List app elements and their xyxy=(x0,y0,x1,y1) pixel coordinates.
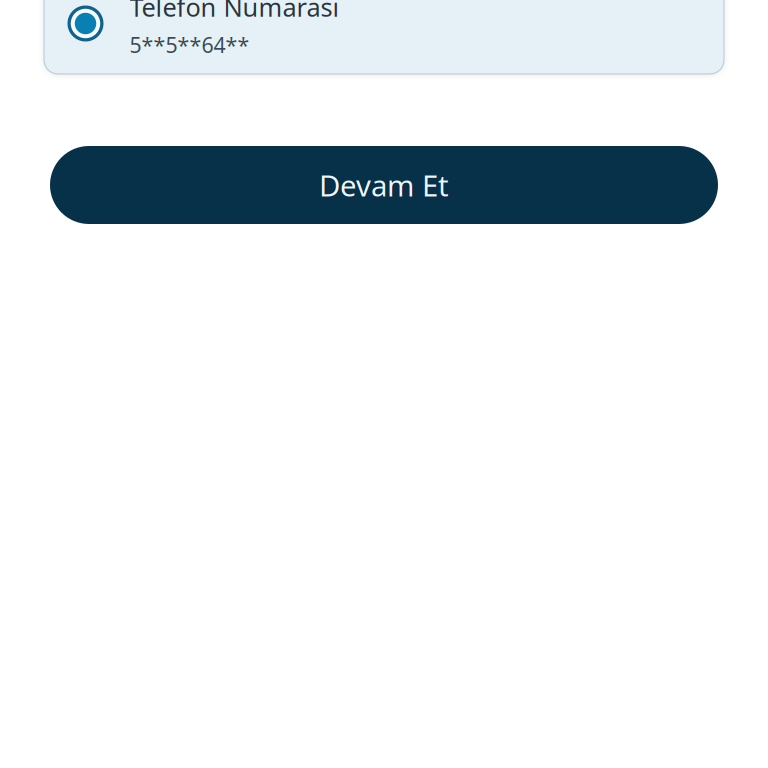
button[interactable]: Telefon Numarası xyxy=(44,0,724,74)
button[interactable]: Devam Et xyxy=(50,146,718,224)
staticText: Devam Et xyxy=(319,165,449,204)
staticText: Telefon Numarası xyxy=(129,0,339,24)
staticText: 5**5**64** xyxy=(129,31,249,59)
